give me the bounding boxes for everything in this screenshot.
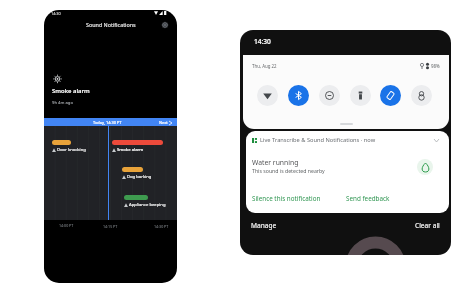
staticText: 14:30 PT — [154, 224, 169, 229]
staticText: 14:00 PT — [59, 223, 74, 228]
staticText: Next — [159, 120, 168, 125]
button[interactable]: Send feedback — [346, 194, 390, 203]
staticText: This sound is detected nearby — [252, 167, 325, 174]
staticText: Manage — [251, 221, 277, 230]
staticText: Smoke alarm — [52, 87, 90, 95]
button[interactable]: Quick setting — [257, 85, 278, 106]
staticText: Appliance beeping — [129, 202, 166, 208]
staticText: Send feedback — [346, 194, 390, 203]
staticText: 14:30 — [254, 37, 271, 46]
button[interactable]: Door knocking — [52, 147, 86, 153]
button[interactable]: Clear all — [415, 221, 440, 230]
staticText: Dog barking — [127, 174, 152, 180]
button[interactable]: Settings — [160, 20, 169, 29]
button[interactable]: Silence this notification — [252, 194, 321, 203]
staticText: Water running — [252, 158, 299, 167]
staticText: 98% — [431, 63, 440, 69]
staticText: 14:15 PT — [103, 224, 118, 229]
button[interactable]: Smoke alarm — [112, 147, 144, 153]
staticText: 14:30 — [51, 11, 61, 16]
staticText: Silence this notification — [252, 194, 321, 203]
button[interactable]: Manage — [251, 221, 277, 230]
button[interactable]: Quick setting — [350, 85, 371, 106]
button[interactable]: Quick setting — [319, 85, 340, 106]
button[interactable]: Dog barking — [122, 174, 152, 180]
button[interactable]: Next — [159, 120, 172, 125]
button[interactable]: Live Transcribe & Sound Notifications · … — [246, 131, 449, 213]
button[interactable]: Quick setting — [380, 85, 401, 106]
staticText: Clear all — [415, 221, 440, 230]
staticText: Door knocking — [57, 147, 86, 153]
staticText: Sound Notifications — [86, 21, 136, 28]
staticText: Today, 14:30 PT — [93, 120, 122, 125]
staticText: Live Transcribe & Sound Notifications · … — [260, 136, 376, 144]
button[interactable]: Quick setting — [288, 85, 309, 106]
button[interactable]: Appliance beeping — [124, 202, 166, 208]
staticText: 9h 4m ago — [52, 100, 73, 106]
staticText: Thu, Aug 22 — [252, 63, 277, 69]
staticText: Smoke alarm — [117, 147, 144, 153]
button[interactable]: Quick setting — [411, 85, 432, 106]
